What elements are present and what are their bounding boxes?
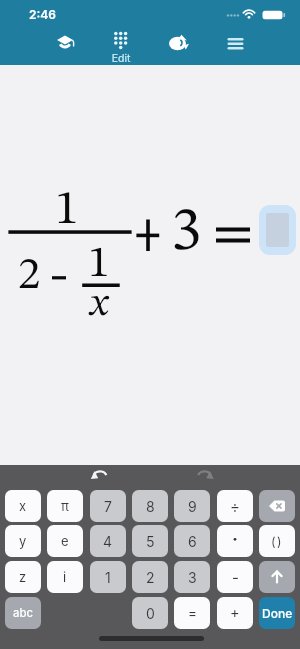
- button[interactable]: π: [47, 490, 83, 522]
- button[interactable]: 1: [90, 561, 126, 593]
- button[interactable]: y: [5, 525, 41, 557]
- button[interactable]: x: [5, 490, 41, 522]
- button[interactable]: Done: [259, 597, 295, 629]
- staticText: 2:46: [29, 7, 56, 22]
- staticText: i: [63, 569, 67, 585]
- button[interactable]: =: [174, 597, 210, 629]
- staticText: abc: [13, 606, 34, 620]
- staticText: e: [61, 533, 69, 549]
- button[interactable]: [259, 490, 295, 522]
- button[interactable]: 2: [132, 561, 168, 593]
- button[interactable]: 0: [132, 597, 168, 629]
- button[interactable]: 8: [132, 490, 168, 522]
- staticText: 2: [146, 569, 155, 586]
- staticText: 8: [146, 498, 155, 515]
- staticText: ÷: [230, 497, 240, 515]
- button[interactable]: Edit: [101, 28, 141, 64]
- button[interactable]: [217, 525, 253, 557]
- button[interactable]: i: [47, 561, 83, 593]
- staticText: (): [271, 534, 284, 549]
- button[interactable]: [259, 205, 296, 255]
- staticText: y: [19, 533, 27, 549]
- staticText: Done: [262, 606, 293, 621]
- button[interactable]: 5: [132, 525, 168, 557]
- staticText: +: [230, 604, 240, 622]
- staticText: z: [19, 569, 27, 585]
- button[interactable]: e: [47, 525, 83, 557]
- button[interactable]: [192, 468, 216, 486]
- button[interactable]: abc: [5, 597, 41, 629]
- button[interactable]: -: [217, 561, 253, 593]
- button[interactable]: 9: [174, 490, 210, 522]
- staticText: π: [61, 498, 69, 514]
- button[interactable]: ÷: [217, 490, 253, 522]
- button[interactable]: 4: [90, 525, 126, 557]
- staticText: 7: [104, 498, 112, 515]
- staticText: =: [188, 605, 197, 621]
- staticText: 4: [103, 533, 113, 550]
- button[interactable]: [88, 468, 112, 486]
- button[interactable]: z: [5, 561, 41, 593]
- button[interactable]: [219, 27, 251, 59]
- staticText: Edit: [101, 52, 141, 65]
- staticText: x: [19, 498, 27, 514]
- staticText: 0: [146, 605, 155, 622]
- button[interactable]: [49, 26, 81, 58]
- button[interactable]: [162, 29, 194, 57]
- staticText: -: [232, 568, 239, 586]
- button[interactable]: 3: [174, 561, 210, 593]
- staticText: 5: [146, 533, 155, 550]
- button[interactable]: +: [217, 597, 253, 629]
- staticText: 3: [188, 569, 197, 586]
- staticText: 1: [105, 569, 111, 586]
- button[interactable]: [259, 561, 295, 593]
- button[interactable]: 6: [174, 525, 210, 557]
- staticText: 6: [188, 533, 197, 550]
- button[interactable]: (): [259, 525, 295, 557]
- button[interactable]: 7: [90, 490, 126, 522]
- staticText: 9: [188, 498, 197, 515]
